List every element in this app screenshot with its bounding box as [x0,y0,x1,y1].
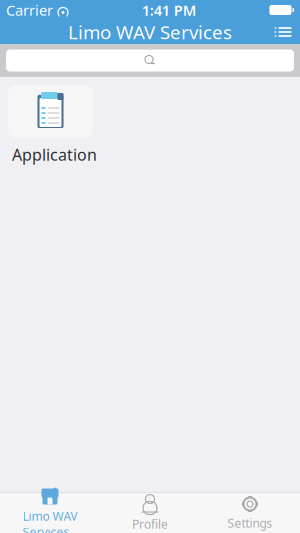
button[interactable]: Settings [200,493,300,533]
staticText: Limo WAV Services [22,508,77,533]
staticText: Limo WAV Services [68,20,232,44]
button[interactable]: Search [6,49,294,71]
button[interactable]: Limo WAV Services [0,493,100,533]
staticText: Carrier [6,0,53,20]
button[interactable]: Menu [266,19,300,45]
button[interactable]: Profile [100,493,200,533]
staticText: Profile [132,516,168,532]
staticText: Settings [227,515,272,531]
staticText: Application [12,144,97,165]
button[interactable]: Application [8,85,93,138]
staticText: 1:41 PM [142,0,197,20]
